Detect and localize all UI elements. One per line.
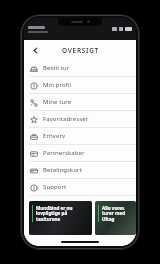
button[interactable]: Betalingskort bbox=[24, 162, 136, 178]
staticText: Mine ture bbox=[43, 98, 72, 106]
staticText: Favoritadresser bbox=[43, 115, 89, 123]
staticText: Support bbox=[43, 183, 67, 191]
button[interactable]: Erhverv bbox=[24, 128, 136, 144]
staticText: Min profil bbox=[43, 81, 72, 89]
staticText: Erhverv bbox=[43, 132, 66, 140]
button[interactable]: Support bbox=[24, 179, 136, 195]
button[interactable]: Favoritadresser bbox=[24, 111, 136, 127]
staticText: OVERSIGT bbox=[62, 46, 99, 55]
button[interactable]: Back bbox=[27, 42, 43, 58]
staticText: Alle vores turer med Ultag bbox=[102, 205, 126, 223]
button[interactable]: Bestil tur bbox=[24, 60, 136, 76]
button[interactable]: Alle vores turer med Ultag bbox=[95, 201, 136, 235]
button[interactable]: Min profil bbox=[24, 77, 136, 93]
button[interactable]: Partnerskaber bbox=[24, 145, 136, 161]
staticText: Betalingskort bbox=[43, 166, 82, 174]
staticText: Bestil tur bbox=[43, 64, 70, 72]
button[interactable]: Mine ture bbox=[24, 94, 136, 110]
staticText: Mundbind er nu lovpligtige på taxiturene bbox=[36, 205, 73, 223]
staticText: Partnerskaber bbox=[43, 149, 85, 157]
button[interactable]: Mundbind er nu lovpligtige på taxiturene bbox=[29, 201, 92, 235]
